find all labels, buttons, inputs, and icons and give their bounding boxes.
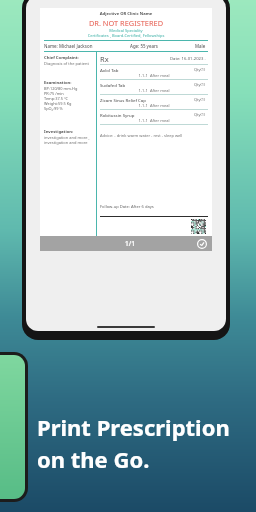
staticText: Investigation:	[44, 129, 74, 135]
staticText: BP:120/80 mm-Hg	[44, 86, 78, 91]
staticText: Adjective OR Clinic Name	[44, 11, 208, 17]
staticText: Print Prescription	[37, 412, 230, 442]
staticText: Advice: - drink warm water - rest - slee…	[100, 133, 183, 138]
staticText: PR:75 /min	[44, 91, 64, 96]
staticText: DR. NOT REGISTERED	[44, 18, 208, 28]
button[interactable]: 1/1	[40, 236, 212, 251]
staticText: 1/1	[125, 239, 135, 248]
staticText: investigation and more , investigation a…	[44, 135, 93, 145]
staticText: 1-1-1 After meal	[100, 103, 208, 108]
staticText: Certificates , Board-Certified, Fellowsh…	[44, 33, 208, 38]
staticText: 1-1-1 After meal	[100, 118, 208, 123]
staticText: Male	[195, 43, 206, 49]
staticText: Qty(1)	[194, 97, 206, 102]
staticText: Robitussin Syrup	[100, 112, 135, 118]
staticText: Qty(1)	[194, 67, 206, 72]
staticText: Diagnosis of the patient	[44, 61, 89, 66]
staticText: Qty(1)	[194, 112, 206, 117]
staticText: SpO₂:99 %	[44, 106, 63, 111]
staticText: Temp:37.5 °C	[44, 96, 69, 101]
staticText: on the Go.	[37, 444, 150, 474]
staticText: 1-1-1 After meal	[100, 73, 208, 78]
staticText: Name: Michael Jackson	[44, 43, 93, 49]
staticText: Rx	[100, 54, 109, 64]
staticText: Follow-up Date: After 6 days	[100, 204, 154, 210]
staticText: Chief Complaint:	[44, 55, 79, 61]
staticText: Sudafed Tab	[100, 82, 126, 88]
staticText: Axlol Tab	[100, 67, 119, 73]
staticText: Date: 16-01-2023 .	[170, 56, 206, 62]
staticText: Medical Speciality	[44, 28, 208, 33]
button[interactable]: Confirm	[197, 239, 207, 249]
staticText: Zicam Sinus Relief Cap	[100, 97, 146, 103]
staticText: 1-1-1 After meal	[100, 88, 208, 93]
staticText: Weight:59.5 Kg	[44, 101, 72, 106]
staticText: Qty(1)	[194, 82, 206, 87]
staticText: Examination:	[44, 80, 72, 86]
staticText: Age: 55 years	[130, 43, 158, 49]
